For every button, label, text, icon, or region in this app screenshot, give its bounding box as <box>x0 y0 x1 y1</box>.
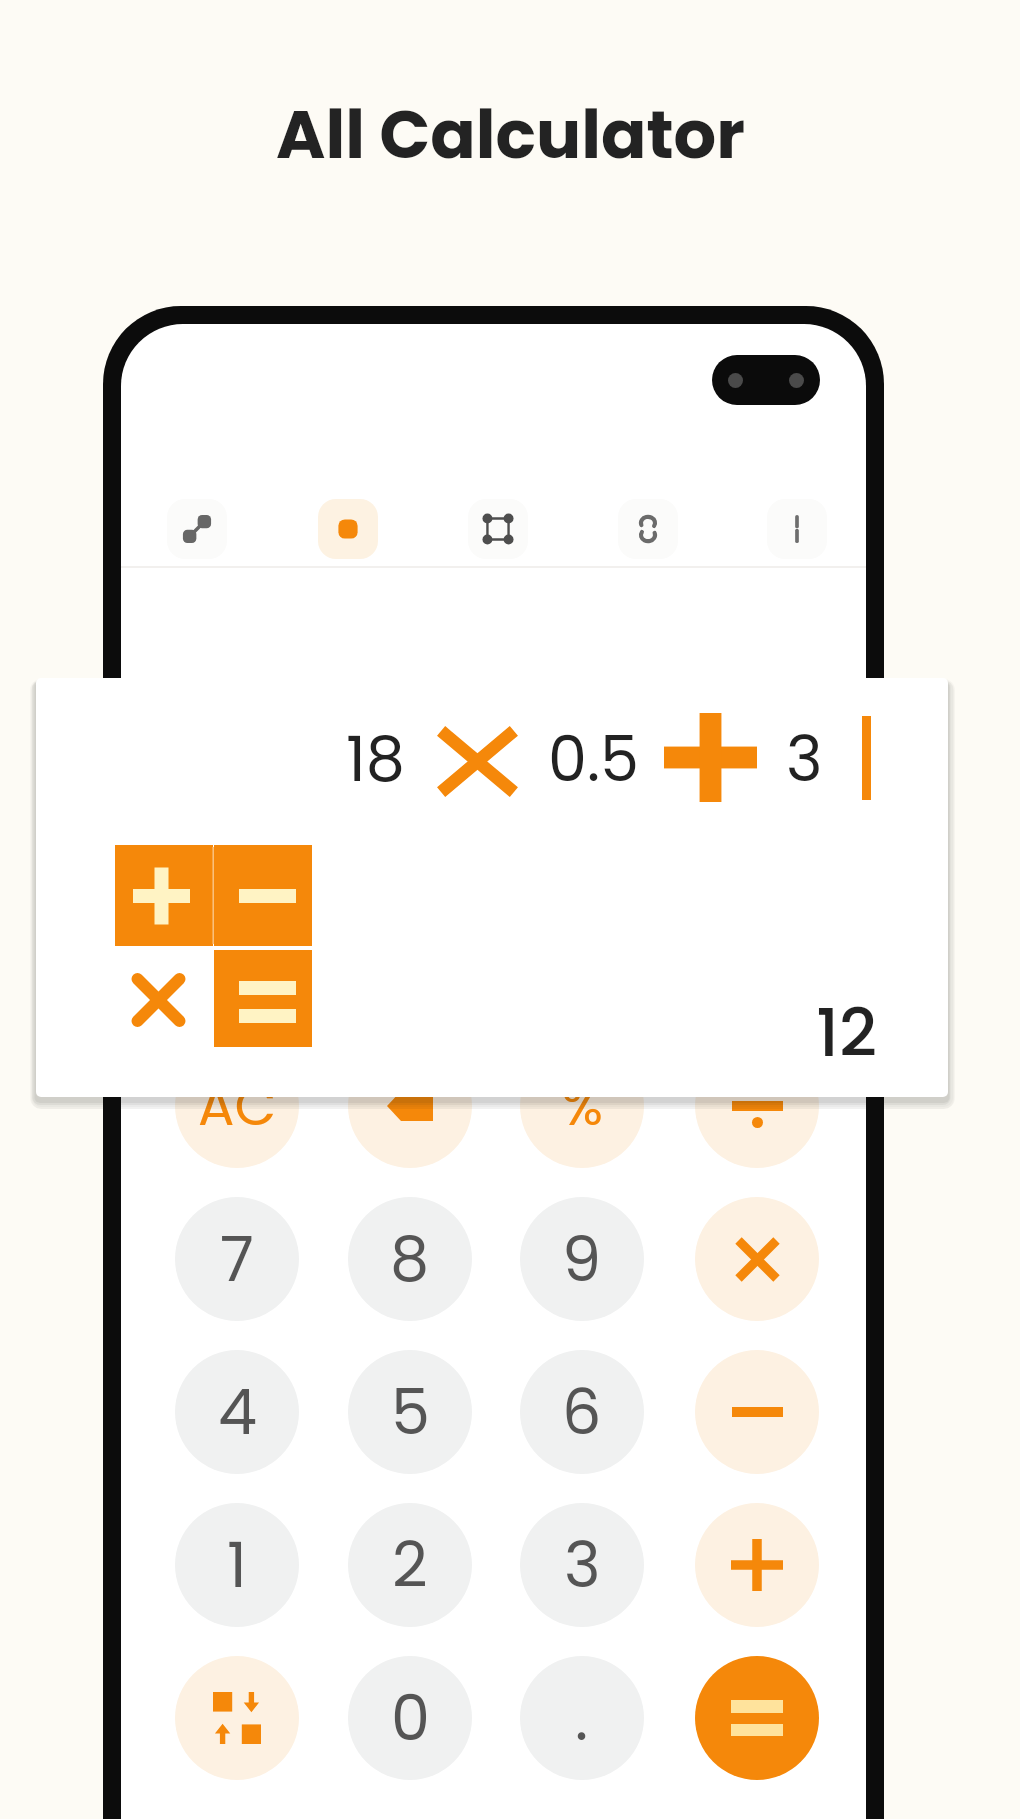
staticText: 4 <box>218 1369 257 1456</box>
button[interactable]: grid <box>175 1656 299 1780</box>
button[interactable]: Expand <box>167 499 227 559</box>
staticText: 2 <box>392 1522 428 1609</box>
button[interactable]: 0 <box>348 1656 472 1780</box>
staticText: 12 <box>816 987 878 1079</box>
staticText: % <box>562 1068 603 1144</box>
staticText: 18 <box>346 716 405 803</box>
button[interactable]: Currency converter <box>618 499 678 559</box>
staticText: 3 <box>786 716 823 803</box>
button[interactable]: − <box>695 1350 819 1474</box>
button[interactable]: 3 <box>520 1503 644 1627</box>
staticText: 5 <box>391 1369 430 1456</box>
staticText: 0.5 <box>548 716 639 803</box>
staticText: 0 <box>391 1675 430 1762</box>
button[interactable]: 4 <box>175 1350 299 1474</box>
button[interactable]: AC <box>175 1044 299 1168</box>
staticText: 7 <box>220 1216 254 1303</box>
staticText: 9 <box>562 1216 602 1303</box>
button[interactable]: = <box>695 1656 819 1780</box>
button[interactable]: del <box>348 1044 472 1168</box>
button[interactable]: ÷ <box>695 1044 819 1168</box>
button[interactable]: 9 <box>520 1197 644 1321</box>
staticText: 8 <box>390 1216 430 1303</box>
button[interactable]: Widgets <box>468 499 528 559</box>
button[interactable]: Theme <box>318 499 378 559</box>
staticText: 1 <box>227 1522 247 1609</box>
button[interactable]: . <box>520 1656 644 1780</box>
button[interactable]: × <box>695 1197 819 1321</box>
staticText: 3 <box>564 1522 601 1609</box>
staticText: . <box>575 1675 589 1762</box>
button[interactable]: 1 <box>175 1503 299 1627</box>
staticText: All Calculator <box>276 88 745 182</box>
button[interactable]: All Calculator — 18 x 0.5 + 3 = 12 <box>36 678 948 1097</box>
button[interactable]: + <box>695 1503 819 1627</box>
button[interactable]: More options <box>767 499 827 559</box>
button[interactable]: 8 <box>348 1197 472 1321</box>
button[interactable]: 7 <box>175 1197 299 1321</box>
button[interactable]: 2 <box>348 1503 472 1627</box>
staticText: AC <box>198 1068 277 1144</box>
staticText: 6 <box>562 1369 602 1456</box>
button[interactable]: 6 <box>520 1350 644 1474</box>
button[interactable]: % <box>520 1044 644 1168</box>
button[interactable]: 5 <box>348 1350 472 1474</box>
